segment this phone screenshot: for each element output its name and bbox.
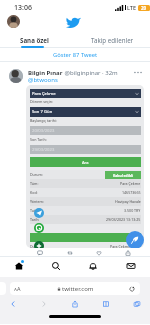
staticText: Yöntem: — [30, 199, 44, 204]
button[interactable]: Telegram — [34, 208, 44, 218]
staticText: 146573665 — [122, 190, 141, 195]
staticText: Dönem seçin: — [30, 99, 53, 104]
button[interactable]: Bilgin Pınar avatar — [9, 69, 23, 83]
staticText: 29/03/2023 13:13:25 — [106, 217, 141, 222]
button[interactable]: Göster 87 Tweet — [0, 49, 150, 60]
button[interactable]: Add — [34, 241, 44, 248]
button[interactable]: Reply — [25, 248, 55, 257]
staticText: Son 7 Gün — [32, 109, 53, 115]
staticText: @bilginpinar · 32m — [63, 69, 118, 77]
button[interactable]: Tweet image — [26, 85, 144, 248]
staticText: LTE — [127, 4, 136, 11]
staticText: @btwoons — [28, 76, 58, 84]
staticText: Takip edilenler — [91, 36, 134, 44]
button[interactable]: Retweet — [55, 248, 84, 257]
button[interactable]: Profile — [7, 15, 20, 28]
button[interactable]: Compose — [126, 231, 144, 248]
staticText: Para Çekme — [120, 181, 141, 186]
staticText: Durum: — [30, 172, 43, 177]
button[interactable]: Twitter home — [66, 16, 81, 29]
staticText: Bilgin Pınar — [28, 69, 63, 77]
button[interactable]: Messages — [112, 257, 150, 275]
button[interactable]: Bookmarks — [99, 297, 113, 311]
staticText: twitter.com — [62, 285, 94, 293]
staticText: 20 — [141, 5, 147, 11]
button[interactable]: Home — [0, 257, 37, 275]
button[interactable]: More options — [132, 66, 144, 78]
button[interactable]: Share — [68, 297, 82, 311]
staticText: 20/03/2023 — [32, 128, 55, 134]
staticText: 13:06 — [14, 3, 32, 13]
staticText: 3.500 TRY — [124, 208, 141, 213]
button[interactable]: Like — [84, 248, 113, 257]
button[interactable]: Address bar twitter.com — [10, 282, 140, 295]
staticText: Son Tarih: — [30, 137, 47, 142]
staticText: Tarih: — [30, 217, 40, 222]
button[interactable]: WhatsApp — [34, 223, 44, 233]
button[interactable]: Search — [37, 257, 74, 275]
staticText: Sana özel — [20, 36, 49, 44]
staticText: Para Çekme — [110, 244, 131, 248]
staticText: Para Çekme — [32, 91, 56, 97]
staticText: Tutar: — [30, 208, 40, 213]
staticText: 29/03/2023 — [32, 147, 55, 153]
staticText: Durum: — [30, 244, 43, 248]
staticText: Havipay Havale — [115, 199, 141, 204]
staticText: Tüm: — [30, 181, 39, 186]
staticText: Ara — [82, 160, 89, 165]
button[interactable]: Back — [6, 297, 20, 311]
button[interactable]: Sana özel — [7, 33, 62, 47]
button[interactable]: Forward — [37, 297, 51, 311]
staticText: ᴀA — [14, 285, 21, 292]
staticText: Kabul edildi — [113, 173, 133, 178]
staticText: Göster 87 Tweet — [53, 51, 98, 59]
button[interactable]: Notifications — [74, 257, 112, 275]
button[interactable]: Takip edilenler — [84, 33, 140, 47]
staticText: Kod: — [30, 190, 38, 195]
button[interactable]: Share — [113, 248, 142, 257]
staticText: Başlangıç tarihi: — [30, 118, 57, 123]
button[interactable]: Tabs — [130, 297, 144, 311]
